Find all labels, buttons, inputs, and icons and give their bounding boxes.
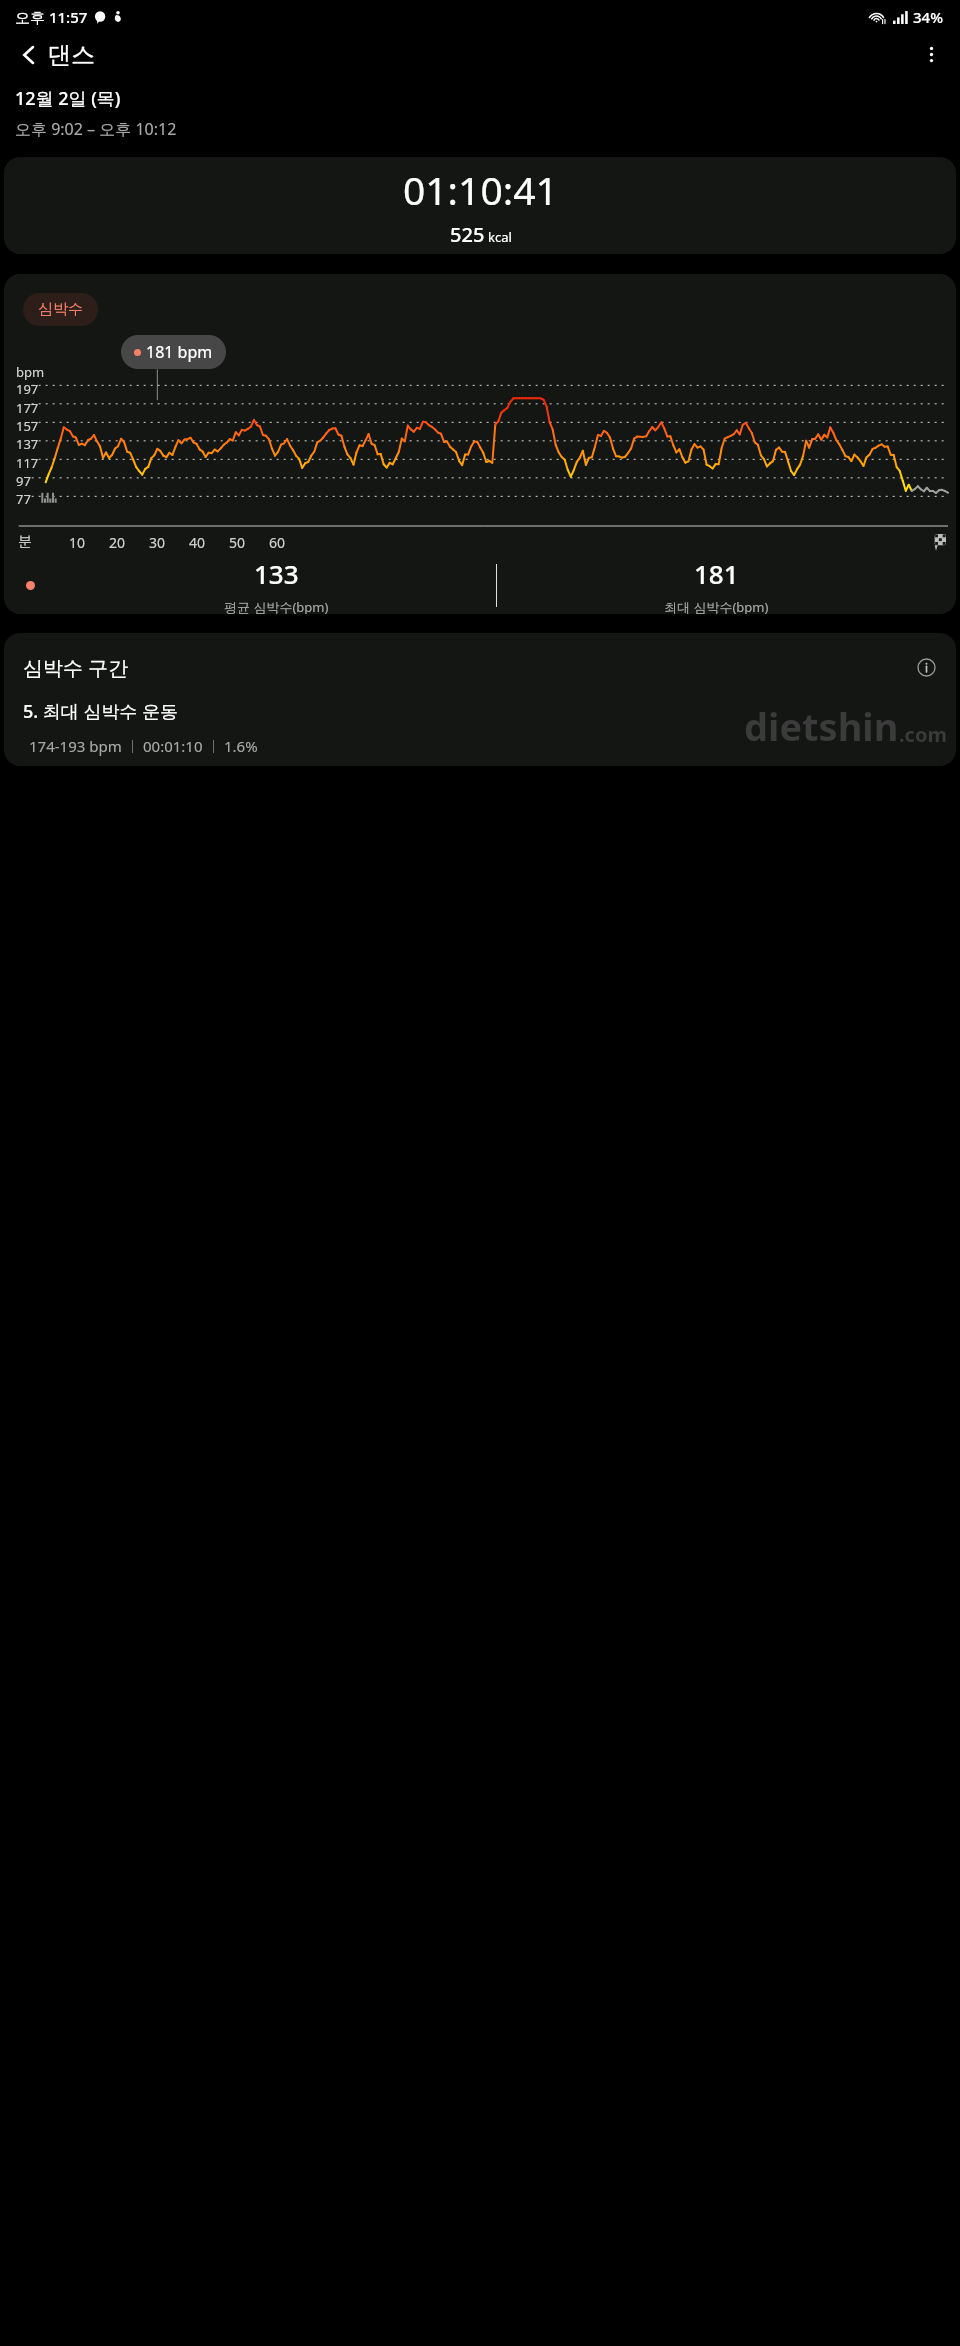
staticText: bpm	[16, 363, 45, 381]
staticText: .com	[899, 721, 947, 748]
staticText: 5. 최대 심박수 운동	[23, 699, 179, 724]
staticText: 00:01:10	[143, 736, 203, 756]
staticText: 34%	[913, 7, 943, 27]
staticText: 심박수	[38, 300, 83, 319]
staticText: 157	[16, 417, 39, 435]
staticText: 댄스	[47, 40, 95, 70]
staticText: 최대 심박수(bpm)	[664, 598, 769, 614]
staticText: 50	[229, 533, 246, 552]
staticText: 77	[16, 490, 31, 508]
staticText: 181	[694, 556, 739, 591]
button[interactable]: Information	[911, 652, 941, 682]
staticText: 177	[16, 399, 39, 417]
staticText: 174-193 bpm	[29, 736, 122, 756]
staticText: 12월 2일 (목)	[15, 86, 121, 111]
staticText: 평균 심박수(bpm)	[224, 598, 329, 614]
staticText: 525	[450, 221, 485, 248]
staticText: kcal	[488, 228, 512, 246]
staticText: 심박수 구간	[23, 654, 129, 681]
staticText: 60	[269, 533, 286, 552]
staticText: 오후 11:57	[15, 7, 88, 27]
staticText: 137	[16, 435, 39, 453]
button[interactable]: 133	[57, 556, 496, 614]
button[interactable]: Back	[10, 36, 47, 73]
staticText: 20	[109, 533, 126, 552]
staticText: dietshin	[744, 700, 899, 752]
staticText: 117	[16, 454, 39, 472]
button[interactable]: 181	[497, 556, 936, 614]
button[interactable]: 심박수	[23, 293, 98, 326]
staticText: 오후 9:02 – 오후 10:12	[15, 118, 177, 140]
staticText: 181 bpm	[146, 341, 213, 363]
staticText: 40	[189, 533, 206, 552]
button[interactable]: More options	[913, 36, 950, 73]
button[interactable]: 181 bpm	[121, 335, 226, 369]
button[interactable]: 01:10:41	[4, 157, 956, 254]
staticText: 분	[18, 533, 32, 551]
staticText: 97	[16, 472, 31, 490]
staticText: 197	[16, 380, 39, 398]
staticText: 133	[254, 556, 299, 591]
staticText: 1.6%	[224, 736, 258, 756]
staticText: 10	[69, 533, 86, 552]
staticText: 01:10:41	[403, 163, 558, 216]
staticText: 30	[149, 533, 166, 552]
